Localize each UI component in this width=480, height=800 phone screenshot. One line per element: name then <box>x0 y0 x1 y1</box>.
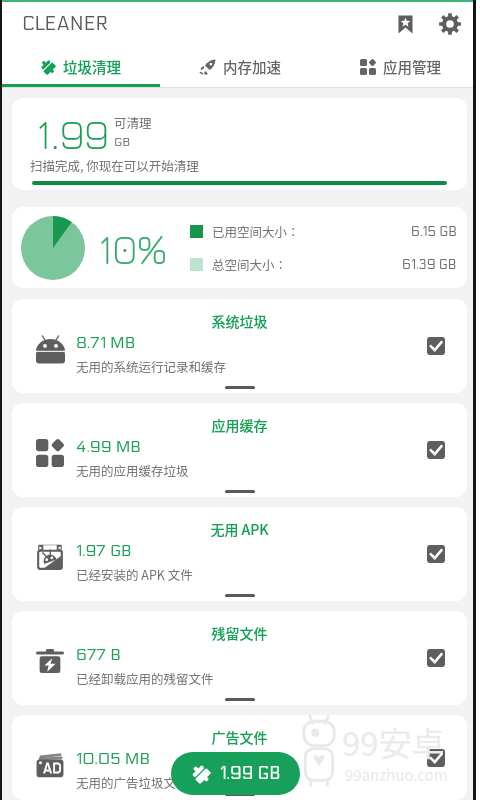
staticText: 已用空间大小： <box>212 222 300 240</box>
staticText: CLEANER <box>22 13 109 36</box>
staticText: 垃圾清理 <box>63 56 121 77</box>
staticText: 1.99 <box>36 108 109 159</box>
staticText: 扫描完成, 你现在可以开始清理 <box>30 156 199 174</box>
button[interactable]: Select 系统垃圾 <box>427 337 445 355</box>
button[interactable]: Select 残留文件 <box>427 649 445 667</box>
staticText: 无用的系统运行记录和缓存 <box>76 357 227 375</box>
staticText: 10% <box>98 223 168 273</box>
button[interactable]: Bookmarks <box>385 4 425 44</box>
staticText: GB <box>114 135 131 149</box>
staticText: 已经卸载应用的残留文件 <box>76 669 214 687</box>
staticText: 677 B <box>76 645 121 664</box>
button[interactable]: 应用管理 <box>320 46 480 87</box>
button[interactable]: 垃圾清理 <box>0 46 160 87</box>
staticText: AD <box>43 761 62 776</box>
staticText: 1.99 GB <box>220 764 281 784</box>
button[interactable]: Select 广告文件 <box>427 749 445 767</box>
button[interactable]: 系统垃圾 <box>12 299 467 393</box>
staticText: 已经安装的 APK 文件 <box>76 565 193 583</box>
staticText: 1.97 GB <box>76 541 132 560</box>
staticText: 61.39 GB <box>402 257 457 272</box>
staticText: 无用的广告垃圾文件 <box>76 773 189 791</box>
button[interactable]: 1.99 GB <box>171 752 300 795</box>
staticText: 8.71 MB <box>76 333 136 352</box>
staticText: 应用管理 <box>383 56 441 77</box>
staticText: 可清理 <box>114 113 152 131</box>
button[interactable]: 应用缓存 <box>12 403 467 497</box>
staticText: 应用缓存 <box>12 415 467 435</box>
staticText: 无用的应用缓存垃圾 <box>76 461 189 479</box>
staticText: 无用 APK <box>12 519 467 539</box>
staticText: 99anzhuo.com <box>345 764 448 786</box>
staticText: 6.15 GB <box>411 224 457 239</box>
button[interactable]: Select 应用缓存 <box>427 441 445 459</box>
staticText: 内存加速 <box>223 56 281 77</box>
button[interactable]: 内存加速 <box>160 46 320 87</box>
staticText: 4.99 MB <box>76 437 141 456</box>
button[interactable]: Settings <box>430 4 470 44</box>
staticText: 系统垃圾 <box>12 311 467 331</box>
staticText: 广告文件 <box>12 727 467 747</box>
button[interactable]: 残留文件 <box>12 611 467 705</box>
button[interactable]: 无用 APK <box>12 507 467 601</box>
button[interactable]: 广告文件 <box>12 715 467 800</box>
staticText: 总空间大小： <box>212 255 288 273</box>
staticText: 99安卓 <box>342 718 445 766</box>
staticText: 残留文件 <box>12 623 467 643</box>
staticText: 10.05 MB <box>76 749 150 768</box>
button[interactable]: Select 无用 APK <box>427 545 445 563</box>
